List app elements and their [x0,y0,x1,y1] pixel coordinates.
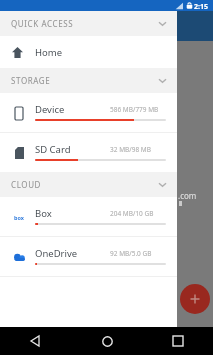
staticText: .com [178,190,197,201]
staticText: 32 MB/98 MB [110,145,151,154]
button[interactable]: Home [0,36,177,68]
button[interactable]: Home [93,327,121,355]
staticText: 2:15 [194,2,208,12]
button[interactable]: box [0,197,177,236]
staticText: QUICK ACCESS [11,18,74,29]
staticText: STORAGE [11,75,51,86]
button[interactable]: STORAGE [0,68,177,93]
staticText: CLOUD [11,179,42,190]
staticText: SD Card [35,143,71,156]
staticText: Box [35,207,52,220]
button[interactable]: Recent apps [164,327,192,355]
staticText: 92 MB/5.0 GB [110,249,152,258]
button[interactable]: SD Card [0,133,177,172]
staticText: 204 MB/10 GB [110,209,154,218]
button[interactable]: Add [180,284,210,314]
button[interactable]: QUICK ACCESS [0,11,177,36]
button[interactable]: Back [22,327,50,355]
staticText: Device [35,103,65,116]
staticText: Home [35,46,63,59]
button[interactable]: CLOUD [0,172,177,197]
staticText: box [14,214,24,221]
staticText: OneDrive [35,247,78,260]
button[interactable]: Device [0,93,177,132]
button[interactable]: OneDrive [0,237,177,276]
staticText: 586 MB/779 MB [110,105,159,114]
